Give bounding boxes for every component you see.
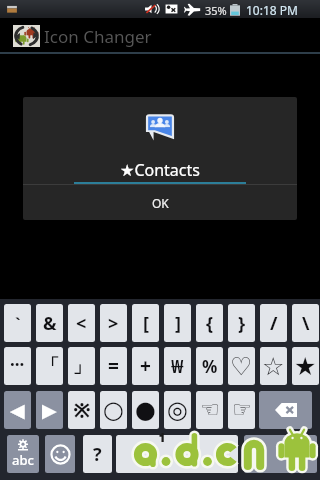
staticText: ? bbox=[93, 442, 102, 467]
staticText: ○ bbox=[103, 396, 124, 424]
button[interactable]: & bbox=[36, 304, 63, 342]
button[interactable]: 」 bbox=[68, 347, 95, 385]
staticText: 10:18 PM bbox=[246, 2, 298, 18]
staticText: Icon Changer bbox=[44, 25, 152, 48]
staticText: ] bbox=[175, 311, 181, 336]
staticText: 35% bbox=[205, 3, 227, 18]
staticText: \ bbox=[302, 311, 310, 336]
button[interactable]: ▶ bbox=[36, 391, 63, 429]
button[interactable]: ☆ bbox=[260, 347, 287, 385]
staticText: < bbox=[76, 311, 87, 336]
staticText: ▶ bbox=[42, 399, 57, 421]
staticText: ◎ bbox=[167, 396, 188, 424]
staticText: ☆ bbox=[262, 352, 285, 381]
button[interactable]: } bbox=[228, 304, 255, 342]
button[interactable]: \ bbox=[292, 304, 319, 342]
staticText: ◀ bbox=[10, 399, 25, 421]
button[interactable]: % bbox=[196, 347, 223, 385]
staticText: & bbox=[43, 311, 57, 336]
button[interactable]: ◎ bbox=[164, 391, 191, 429]
staticText: + bbox=[140, 353, 151, 379]
button[interactable]: ◀ bbox=[4, 391, 31, 429]
staticText: OK bbox=[152, 195, 169, 211]
button[interactable]: [ bbox=[132, 304, 159, 342]
button[interactable]: ? bbox=[83, 435, 112, 473]
button[interactable]: ★ bbox=[292, 347, 319, 385]
staticText: ※ bbox=[73, 396, 91, 425]
button[interactable]: ··· bbox=[4, 347, 31, 385]
staticText: ☜ bbox=[200, 397, 220, 423]
staticText: ★Contacts bbox=[120, 159, 200, 181]
button[interactable]: Switch to abc keyboard bbox=[7, 435, 39, 473]
staticText: [ bbox=[143, 311, 149, 336]
button[interactable]: ` bbox=[4, 304, 31, 342]
button[interactable]: Enter bbox=[244, 435, 317, 473]
button[interactable]: ☞ bbox=[228, 391, 255, 429]
staticText: ☞ bbox=[232, 397, 252, 423]
staticText: / bbox=[270, 311, 278, 336]
button[interactable]: { bbox=[196, 304, 223, 342]
staticText: abc bbox=[12, 451, 34, 469]
button[interactable]: ♡ bbox=[228, 347, 255, 385]
staticText: % bbox=[202, 355, 218, 378]
button[interactable]: Space bbox=[116, 435, 238, 473]
staticText: 」 bbox=[73, 355, 91, 378]
button[interactable]: OK bbox=[23, 185, 297, 220]
button[interactable]: ] bbox=[164, 304, 191, 342]
button[interactable]: > bbox=[100, 304, 127, 342]
staticText: 「 bbox=[41, 355, 59, 378]
button[interactable]: ○ bbox=[100, 391, 127, 429]
staticText: ★ bbox=[294, 352, 317, 381]
button[interactable]: < bbox=[68, 304, 95, 342]
button[interactable]: Emoji bbox=[45, 435, 75, 473]
staticText: = bbox=[108, 353, 119, 379]
button[interactable]: Backspace bbox=[259, 391, 312, 429]
staticText: ♡ bbox=[230, 352, 253, 381]
button[interactable]: / bbox=[260, 304, 287, 342]
staticText: ● bbox=[135, 396, 156, 424]
button[interactable]: ☜ bbox=[196, 391, 223, 429]
staticText: ` bbox=[15, 313, 21, 333]
staticText: } bbox=[238, 311, 246, 336]
button[interactable]: ● bbox=[132, 391, 159, 429]
staticText: ₩ bbox=[171, 355, 184, 378]
button[interactable]: + bbox=[132, 347, 159, 385]
staticText: > bbox=[108, 311, 119, 336]
staticText: { bbox=[206, 311, 214, 336]
staticText: ··· bbox=[10, 353, 25, 376]
button[interactable]: 「 bbox=[36, 347, 63, 385]
button[interactable]: ※ bbox=[68, 391, 95, 429]
button[interactable]: = bbox=[100, 347, 127, 385]
button[interactable]: ₩ bbox=[164, 347, 191, 385]
